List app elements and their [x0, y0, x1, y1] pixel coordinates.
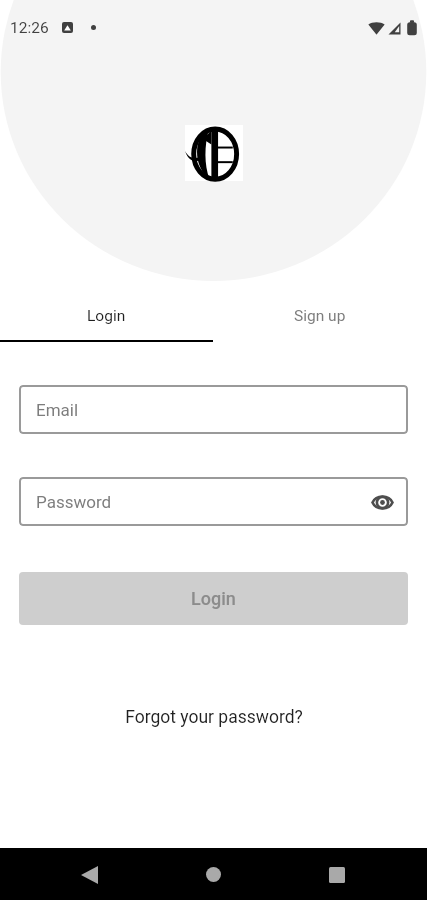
button[interactable]: Back — [66, 851, 113, 898]
button[interactable]: Password — [19, 477, 408, 526]
button[interactable]: Forgot your password? — [0, 704, 427, 730]
staticText: Login — [191, 588, 236, 609]
button[interactable]: Login — [0, 300, 213, 332]
button[interactable]: Recent apps — [313, 851, 360, 898]
button[interactable]: Show password — [368, 488, 396, 516]
staticText: Password — [36, 492, 112, 512]
staticText: Email — [36, 400, 79, 420]
button[interactable]: Sign up — [213, 300, 427, 332]
button[interactable]: Login — [19, 572, 408, 625]
staticText: Login — [87, 307, 126, 325]
button[interactable]: Home — [190, 851, 237, 898]
button[interactable]: Email — [19, 385, 408, 434]
staticText: Sign up — [294, 307, 346, 325]
staticText: Forgot your password? — [125, 707, 303, 728]
staticText: 12:26 — [10, 19, 49, 37]
